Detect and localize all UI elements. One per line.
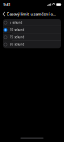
button[interactable]: 30 sekund bbox=[3, 41, 61, 48]
staticText: 9:41 bbox=[3, 2, 10, 7]
button[interactable]: 15 sekund bbox=[3, 34, 61, 41]
button[interactable]: Back bbox=[2, 9, 7, 19]
staticText: 5 sekund bbox=[9, 21, 22, 24]
staticText: Časový limit uzamčení obrazovky bbox=[7, 11, 58, 17]
button[interactable]: 5 sekund bbox=[3, 19, 61, 26]
staticText: 15 sekund bbox=[9, 35, 24, 39]
staticText: 30 sekund bbox=[9, 43, 24, 46]
button[interactable]: 10 sekund bbox=[3, 26, 61, 34]
staticText: 10 sekund bbox=[9, 28, 24, 32]
